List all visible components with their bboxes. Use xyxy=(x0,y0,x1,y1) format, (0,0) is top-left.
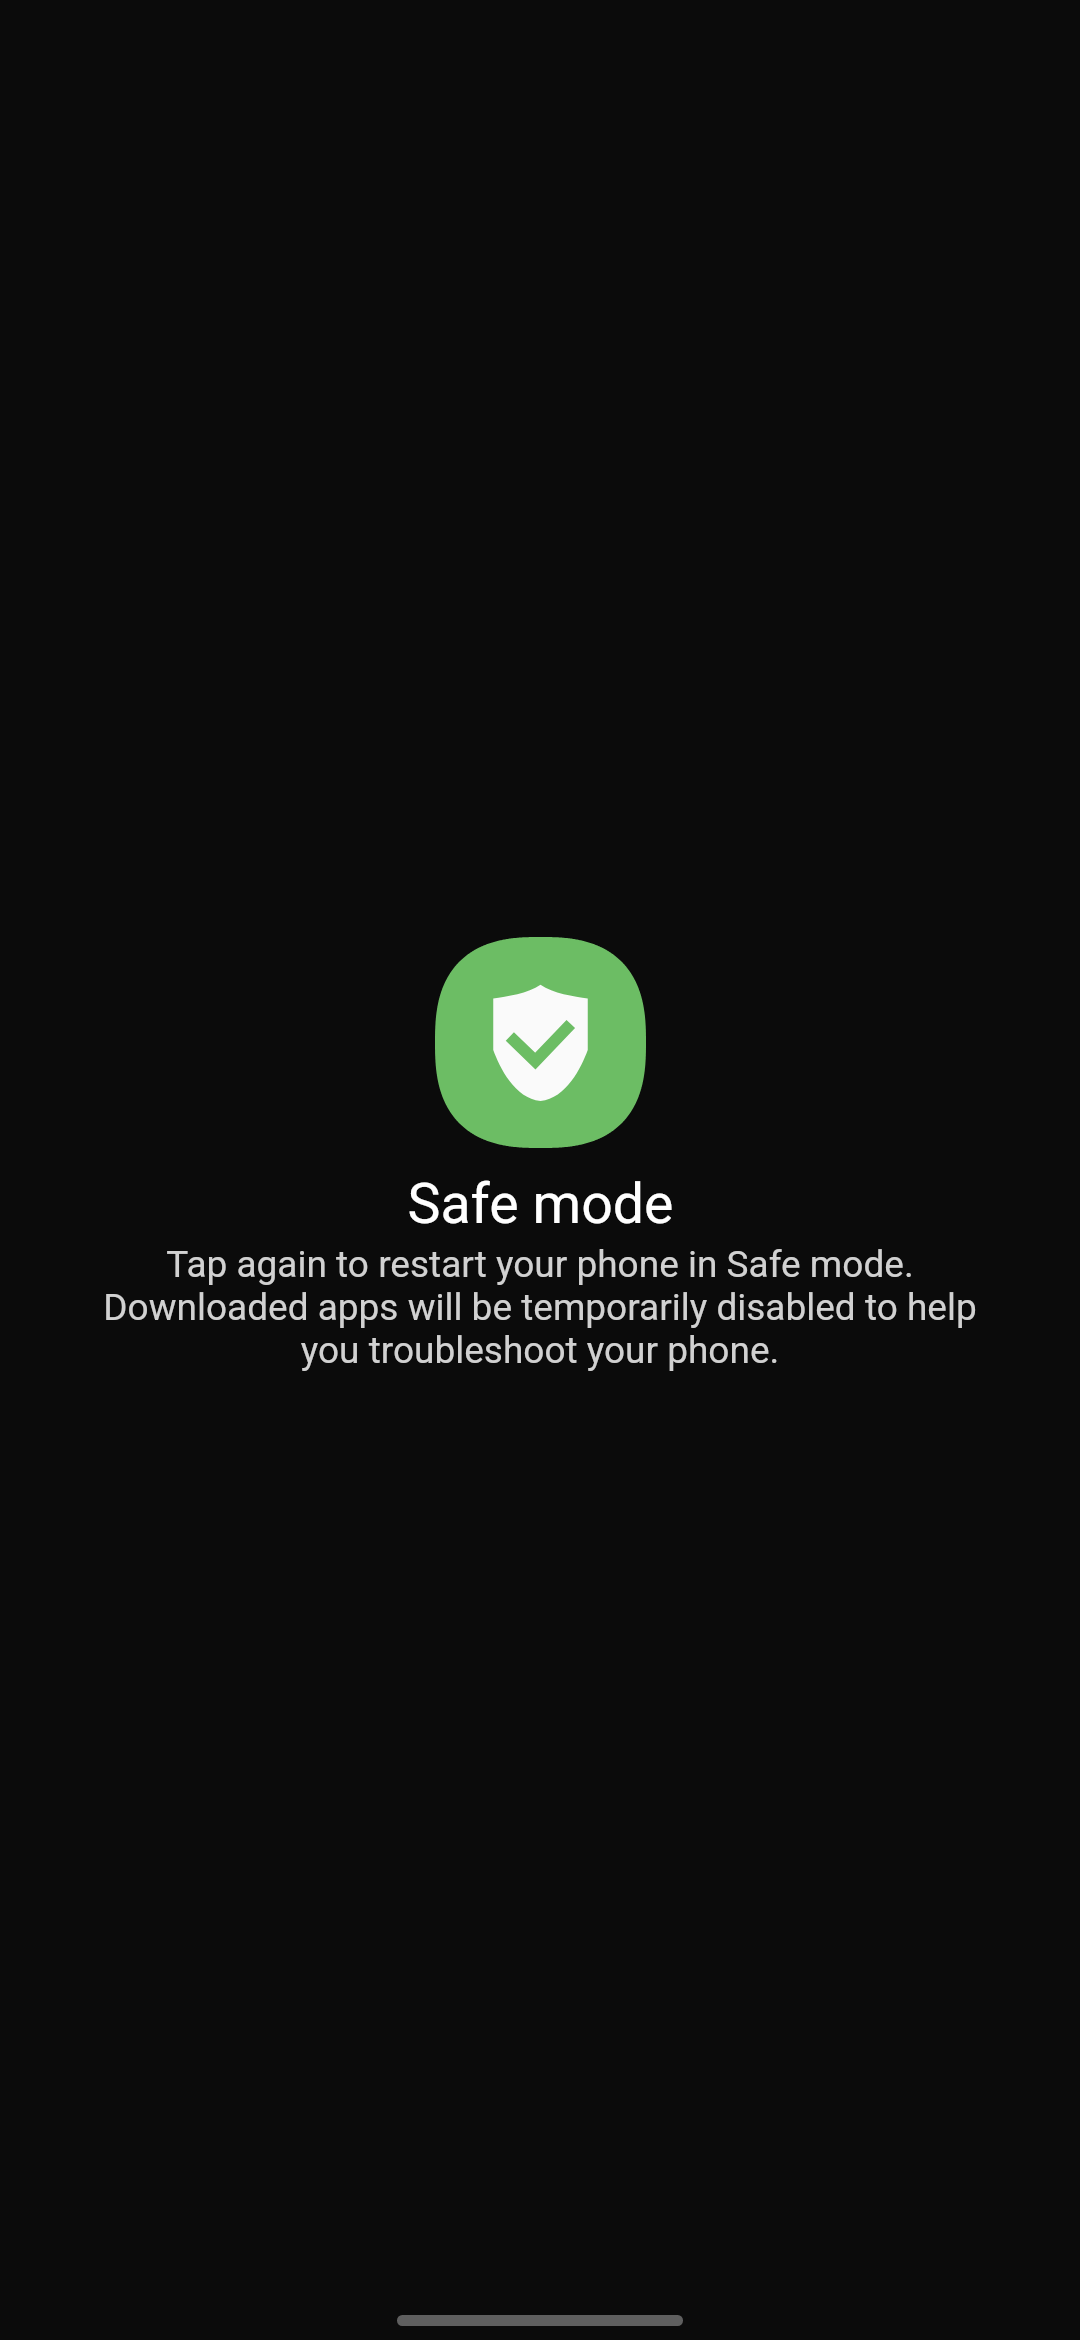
staticText: Safe mode xyxy=(407,1172,674,1237)
staticText: Tap again to restart your phone in Safe … xyxy=(90,1243,990,1372)
button[interactable]: Restart phone in Safe mode xyxy=(0,937,1080,1372)
